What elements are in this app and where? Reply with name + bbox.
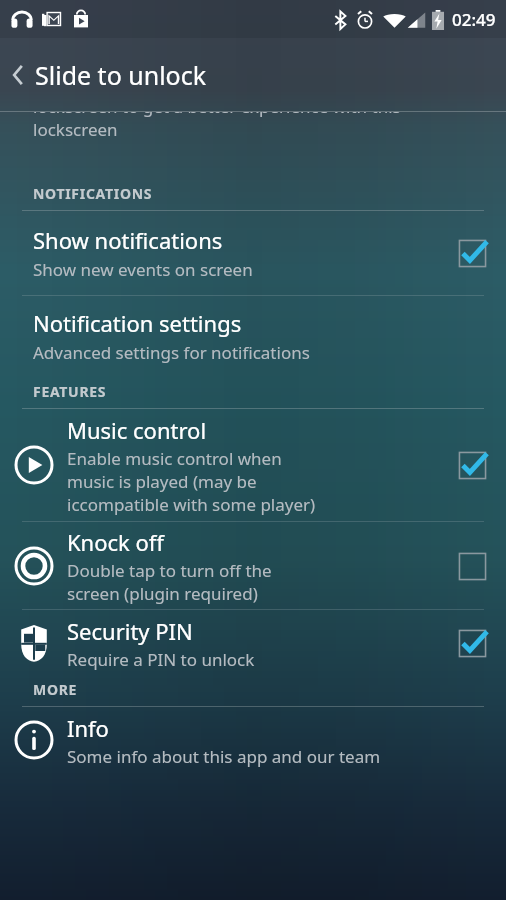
button[interactable]: [449, 230, 495, 276]
button[interactable]: Knock off: [0, 522, 506, 609]
staticText: NOTIFICATIONS: [33, 184, 153, 203]
button[interactable]: Notification settings: [0, 296, 506, 376]
staticText: Info: [67, 713, 109, 743]
staticText: 02:49: [452, 8, 496, 31]
other: Info: [14, 720, 54, 760]
other: Music control: [14, 445, 54, 485]
staticText: Knock off: [67, 527, 164, 557]
staticText: Require a PIN to unlock: [67, 648, 255, 671]
other: Knock off: [14, 546, 54, 586]
button[interactable]: Back: [0, 48, 223, 102]
staticText: Show new events on screen: [33, 258, 253, 281]
button[interactable]: Security PIN: [0, 610, 506, 676]
staticText: MORE: [33, 680, 78, 699]
staticText: FEATURES: [33, 382, 107, 401]
other: Security PIN: [14, 623, 54, 663]
button[interactable]: [449, 620, 495, 666]
staticText: Slide to unlock: [35, 58, 207, 92]
staticText: lockscreen: [33, 118, 118, 141]
staticText: Security PIN: [67, 616, 193, 646]
button[interactable]: Info: [0, 707, 506, 773]
staticText: music is played (may be: [67, 470, 257, 493]
staticText: Some info about this app and our team: [67, 745, 381, 768]
staticText: screen (plugin required): [67, 582, 258, 605]
staticText: Advanced settings for notifications: [33, 341, 310, 364]
staticText: Double tap to turn off the: [67, 559, 272, 582]
button[interactable]: [449, 442, 495, 488]
staticText: iccompatible with some player): [67, 493, 316, 516]
staticText: Notification settings: [33, 308, 242, 338]
staticText: Show notifications: [33, 225, 223, 255]
button[interactable]: Show notifications: [0, 211, 506, 295]
staticText: lockscreen to get a better experience wi…: [33, 112, 401, 118]
staticText: Enable music control when: [67, 447, 282, 470]
staticText: Music control: [67, 415, 207, 445]
other: Back: [10, 61, 26, 89]
button[interactable]: [449, 543, 495, 589]
button[interactable]: Music control: [0, 409, 506, 521]
